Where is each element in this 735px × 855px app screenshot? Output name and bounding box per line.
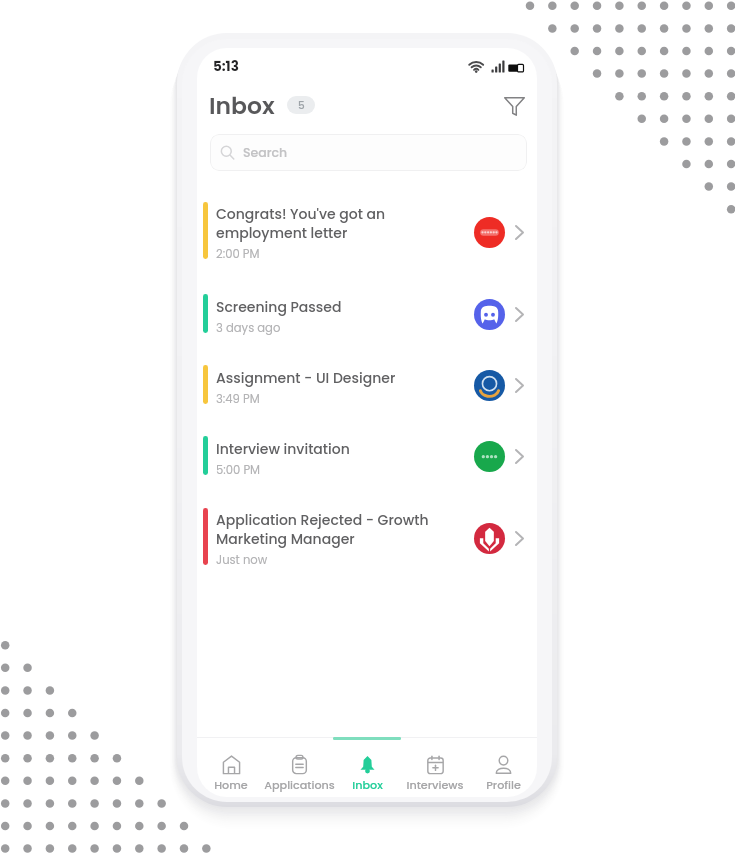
- button[interactable]: Home: [197, 737, 265, 797]
- staticText: Home: [214, 777, 248, 793]
- button[interactable]: Application Rejected - Growth Marketing …: [197, 496, 537, 576]
- staticText: Congrats! You've got an employment lette…: [216, 204, 386, 243]
- button[interactable]: Profile: [469, 737, 537, 797]
- button[interactable]: Search: [210, 134, 527, 171]
- button[interactable]: Applications: [265, 737, 333, 797]
- staticText: 5:13: [213, 57, 239, 76]
- button[interactable]: Screening Passed: [197, 279, 537, 347]
- staticText: 2:00 PM: [216, 246, 260, 262]
- staticText: 3 days ago: [216, 320, 281, 336]
- button[interactable]: Assignment - UI Designer: [197, 350, 537, 418]
- staticText: Inbox: [352, 777, 383, 793]
- staticText: Interviews: [406, 777, 464, 793]
- staticText: 5: [298, 98, 305, 113]
- staticText: Assignment - UI Designer: [216, 368, 396, 388]
- staticText: 5:00 PM: [216, 462, 261, 478]
- button[interactable]: Interview invitation: [197, 421, 537, 489]
- staticText: Search: [243, 144, 288, 161]
- button[interactable]: Filter: [498, 90, 530, 122]
- staticText: Profile: [486, 777, 521, 793]
- staticText: Applications: [264, 777, 335, 793]
- button[interactable]: Interviews: [401, 737, 469, 797]
- staticText: Inbox: [209, 89, 275, 122]
- button[interactable]: Inbox: [333, 737, 401, 797]
- staticText: Interview invitation: [216, 439, 350, 459]
- staticText: 3:49 PM: [216, 391, 260, 407]
- staticText: Just now: [216, 552, 268, 568]
- staticText: Screening Passed: [216, 297, 342, 317]
- staticText: Application Rejected - Growth Marketing …: [216, 510, 429, 549]
- button[interactable]: Congrats! You've got an employment lette…: [197, 190, 537, 270]
